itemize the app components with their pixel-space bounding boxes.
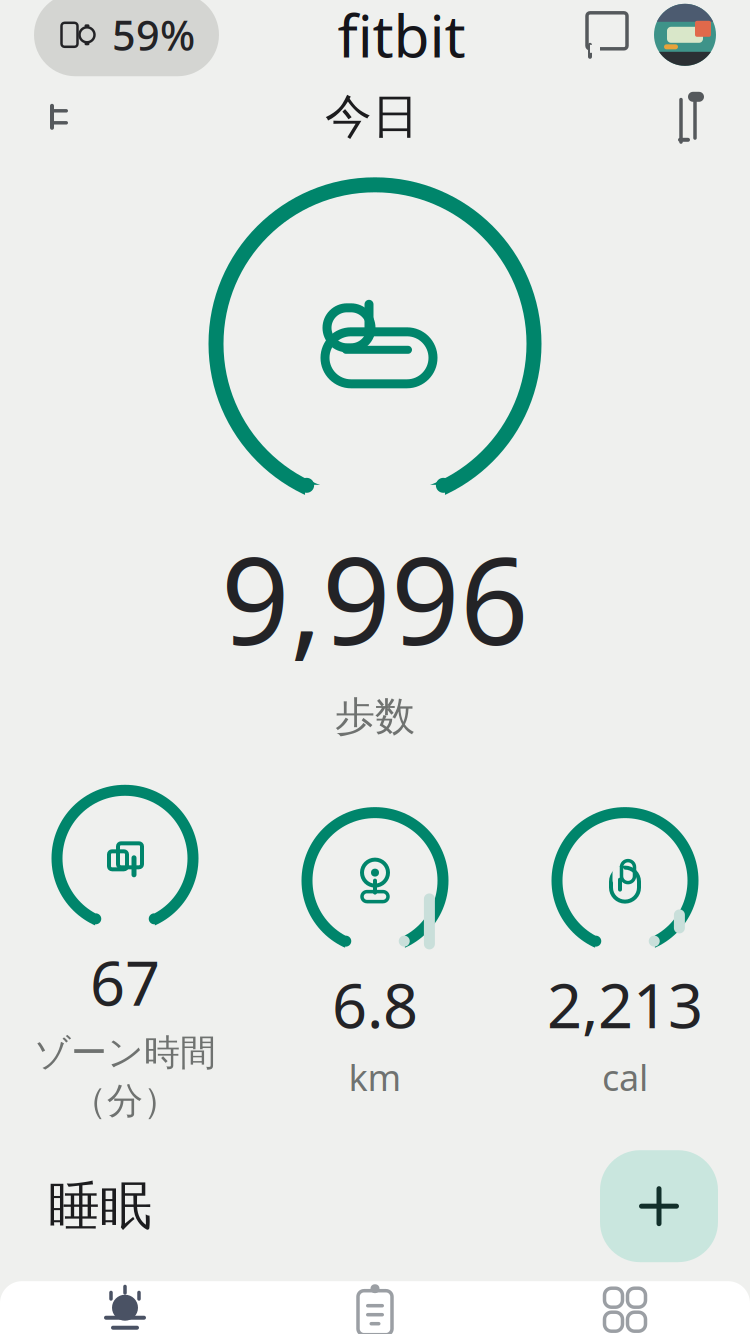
button[interactable]: Profile	[654, 4, 716, 66]
staticText: fitbit	[337, 0, 465, 74]
staticText: 9,996	[221, 519, 529, 678]
staticText: 歩数	[335, 692, 415, 741]
staticText: 67	[90, 941, 160, 1023]
staticText: 2,213	[547, 964, 703, 1045]
staticText: （分）	[71, 1079, 179, 1123]
staticText: km	[348, 1053, 401, 1101]
button[interactable]: Edit	[668, 91, 708, 143]
button[interactable]: 67	[0, 785, 250, 1123]
button[interactable]: コーチ	[250, 1276, 500, 1334]
staticText: 睡眠	[48, 1174, 152, 1238]
staticText: ゾーン時間	[34, 1031, 216, 1075]
button[interactable]: 6.8	[250, 808, 500, 1101]
staticText: 59%	[112, 7, 195, 62]
button[interactable]: Back	[42, 96, 76, 138]
button[interactable]: Device battery 59 percent	[34, 0, 219, 76]
button[interactable]: Messages	[584, 10, 630, 60]
button[interactable]: 2,213	[500, 808, 750, 1101]
button[interactable]: 9,996	[205, 185, 545, 741]
button[interactable]: 今日	[0, 1276, 250, 1334]
button[interactable]: Add	[600, 1150, 718, 1262]
staticText: cal	[602, 1053, 648, 1101]
staticText: 6.8	[332, 964, 418, 1045]
staticText: 今日	[325, 88, 419, 145]
button[interactable]: 自分	[500, 1276, 750, 1334]
